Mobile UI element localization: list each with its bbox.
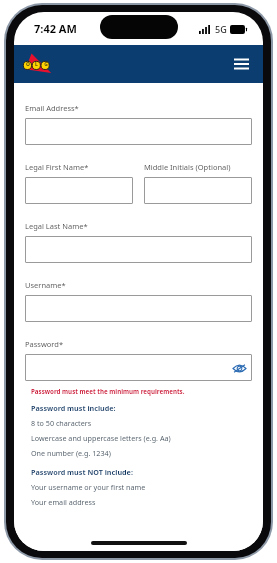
- staticText: Legal First Name*: [25, 162, 89, 172]
- staticText: Password must include:: [31, 403, 116, 413]
- button[interactable]: OLG home: [22, 52, 56, 76]
- staticText: One number (e.g. 1234): [31, 448, 111, 458]
- staticText: 8 to 50 characters: [31, 418, 92, 428]
- button[interactable]: Menu: [229, 52, 253, 76]
- staticText: Password must meet the minimum requireme…: [31, 387, 185, 395]
- staticText: Username*: [25, 280, 66, 290]
- staticText: Your username or your first name: [31, 482, 146, 492]
- staticText: G: [44, 61, 48, 68]
- staticText: Legal Last Name*: [25, 221, 88, 231]
- staticText: Your email address: [31, 497, 96, 507]
- button[interactable]: [144, 177, 252, 204]
- button[interactable]: Show password: [25, 354, 252, 381]
- button[interactable]: [25, 236, 252, 263]
- staticText: 7:42 AM: [34, 21, 77, 36]
- staticText: Password must NOT include:: [31, 467, 133, 477]
- button[interactable]: Show password: [232, 361, 246, 375]
- button[interactable]: [25, 177, 133, 204]
- staticText: L: [35, 61, 38, 68]
- staticText: Middle Initials (Optional): [144, 162, 231, 172]
- button[interactable]: [25, 118, 252, 145]
- staticText: O: [26, 61, 30, 68]
- staticText: 5G: [215, 23, 227, 35]
- staticText: Email Address*: [25, 103, 79, 113]
- button[interactable]: [25, 295, 252, 322]
- staticText: Lowercase and uppercase letters (e.g. Aa…: [31, 433, 171, 443]
- staticText: Password*: [25, 339, 64, 349]
